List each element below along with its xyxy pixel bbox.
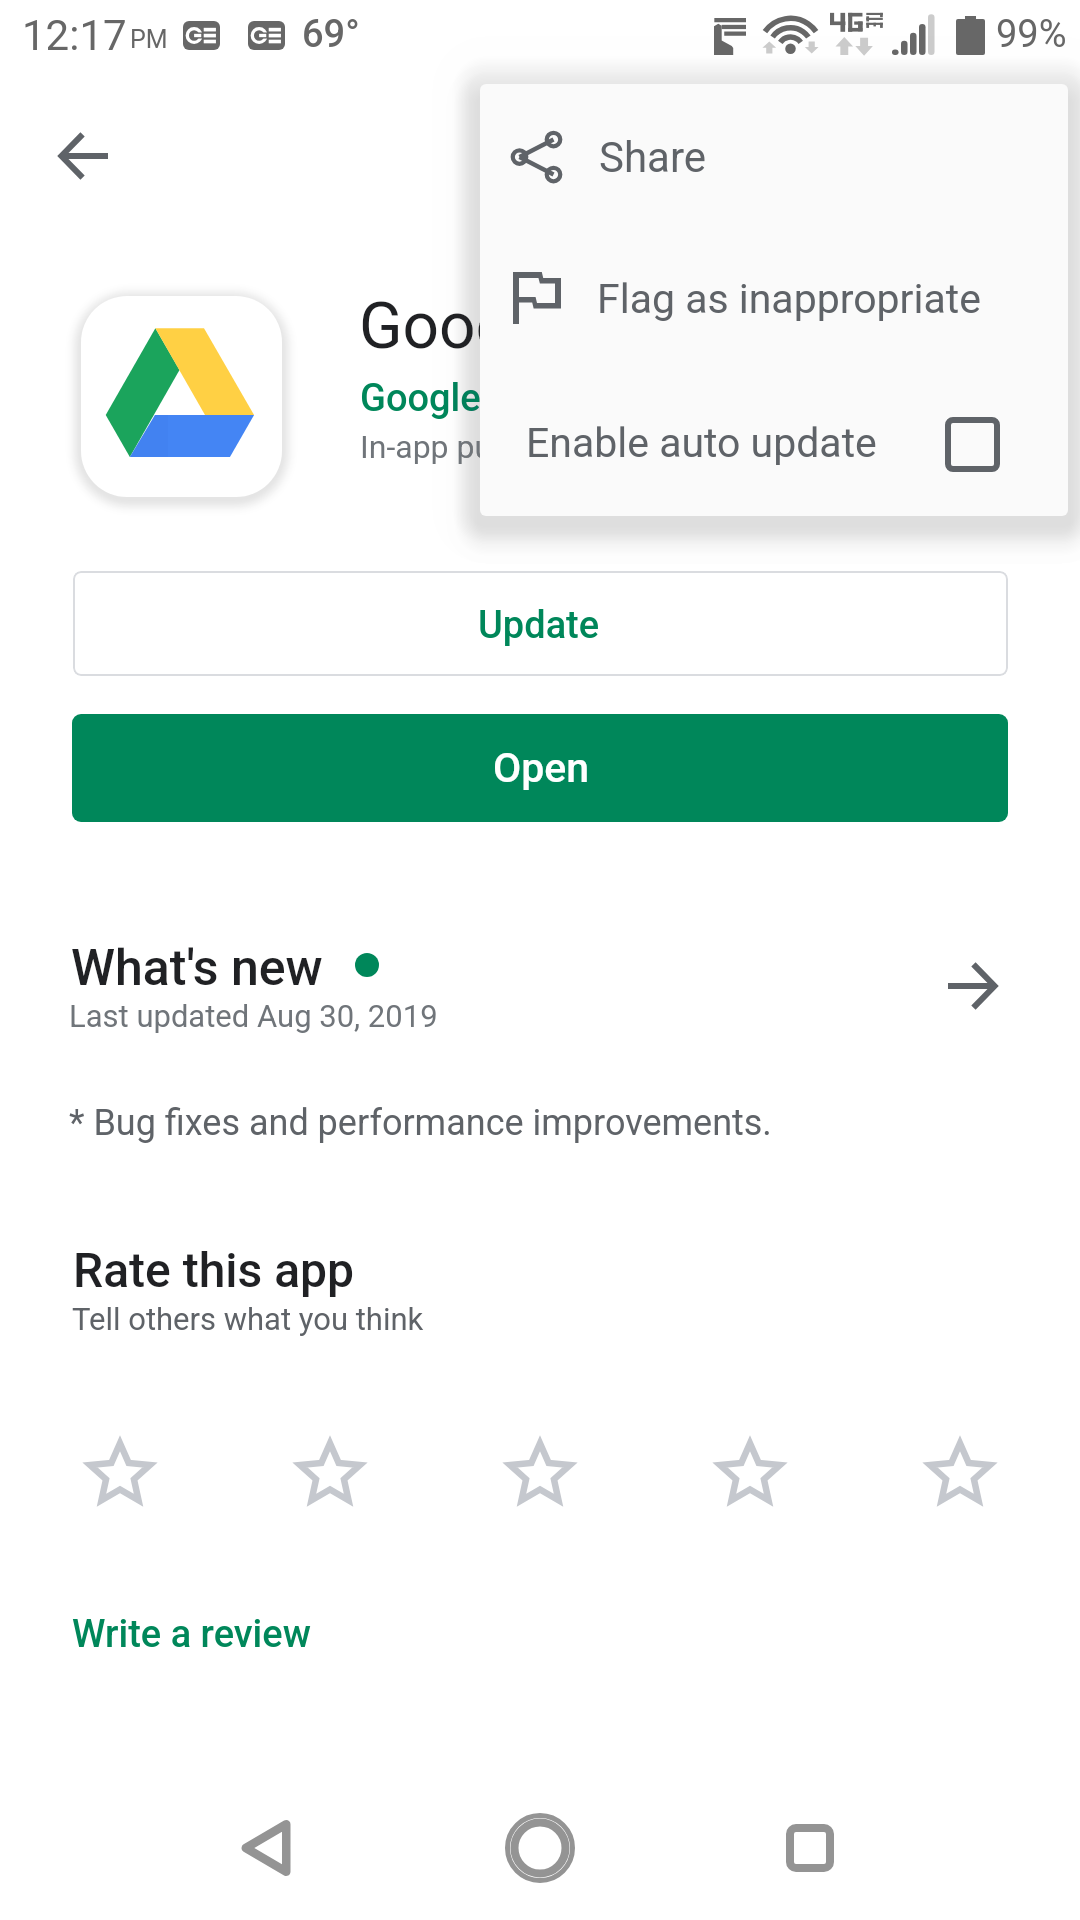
button[interactable]: Back [218, 1800, 314, 1896]
button[interactable]: Update [73, 571, 1008, 676]
button[interactable]: Home [492, 1800, 588, 1896]
button[interactable]: Rate 3 star [486, 1415, 594, 1531]
button[interactable]: Share [480, 84, 1068, 228]
button[interactable]: What's new [0, 915, 1080, 1060]
staticText: Enable auto update [526, 419, 877, 467]
button[interactable]: Recent apps [762, 1800, 858, 1896]
button[interactable]: Navigate up [36, 108, 132, 204]
staticText: Write a review [72, 1612, 311, 1657]
button[interactable]: Rate 5 star [906, 1415, 1014, 1531]
staticText: 12:17 [22, 11, 127, 60]
staticText: In-app purchases [360, 428, 605, 466]
staticText: 99% [996, 12, 1067, 57]
button[interactable]: Rate 1 star [66, 1415, 174, 1531]
staticText: Last updated Aug 30, 2019 [69, 998, 438, 1034]
staticText: Rate this app [73, 1242, 355, 1298]
button[interactable]: Flag as inappropriate [480, 228, 1068, 372]
staticText: Tell others what you think [72, 1301, 424, 1337]
button[interactable]: Rate 2 star [276, 1415, 384, 1531]
button[interactable]: Rate 4 star [696, 1415, 804, 1531]
staticText: What's new [71, 939, 323, 998]
staticText: 69° [302, 12, 360, 57]
staticText: Google Drive [359, 289, 721, 364]
staticText: Flag as inappropriate [597, 275, 981, 323]
button[interactable]: Open [72, 714, 1008, 822]
staticText: * Bug fixes and performance improvements… [69, 1102, 772, 1144]
staticText: PM [130, 25, 168, 54]
staticText: Update [478, 603, 600, 648]
staticText: Open [493, 744, 590, 792]
button[interactable]: Write a review [72, 1612, 311, 1657]
staticText: Google LLC [360, 376, 555, 421]
staticText: Share [599, 133, 707, 182]
button[interactable]: Enable auto update [480, 372, 1068, 516]
